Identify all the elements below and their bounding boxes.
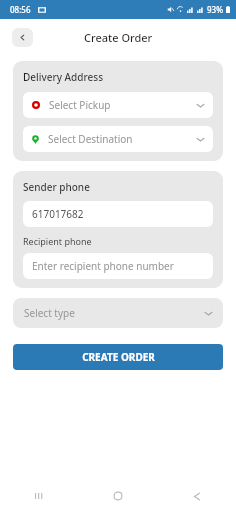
button[interactable]: CREATE ORDER (13, 344, 223, 370)
staticText: 08:56 (10, 4, 31, 15)
staticText: Delivery Address (23, 70, 104, 84)
button[interactable]: Back (157, 480, 236, 512)
staticText: Select type (24, 306, 75, 320)
button[interactable]: Select Destination (23, 126, 213, 152)
staticText: Sender phone (23, 180, 90, 194)
staticText: CREATE ORDER (82, 350, 155, 364)
button[interactable]: Recent apps (0, 480, 78, 512)
button[interactable]: Select Pickup (23, 92, 213, 118)
button[interactable]: Home (78, 480, 157, 512)
staticText: 93% (207, 4, 223, 15)
button[interactable]: Back (12, 28, 33, 47)
staticText: Create Order (84, 30, 153, 45)
button[interactable]: Select type (13, 298, 223, 328)
staticText: 617017682 (32, 207, 84, 221)
staticText: Select Destination (48, 132, 133, 146)
staticText: Enter recipient phone number (32, 259, 174, 273)
button[interactable]: 617017682 (23, 201, 213, 227)
staticText: Select Pickup (49, 98, 111, 112)
staticText: Recipient phone (23, 235, 92, 247)
button[interactable]: Enter recipient phone number (23, 253, 213, 279)
